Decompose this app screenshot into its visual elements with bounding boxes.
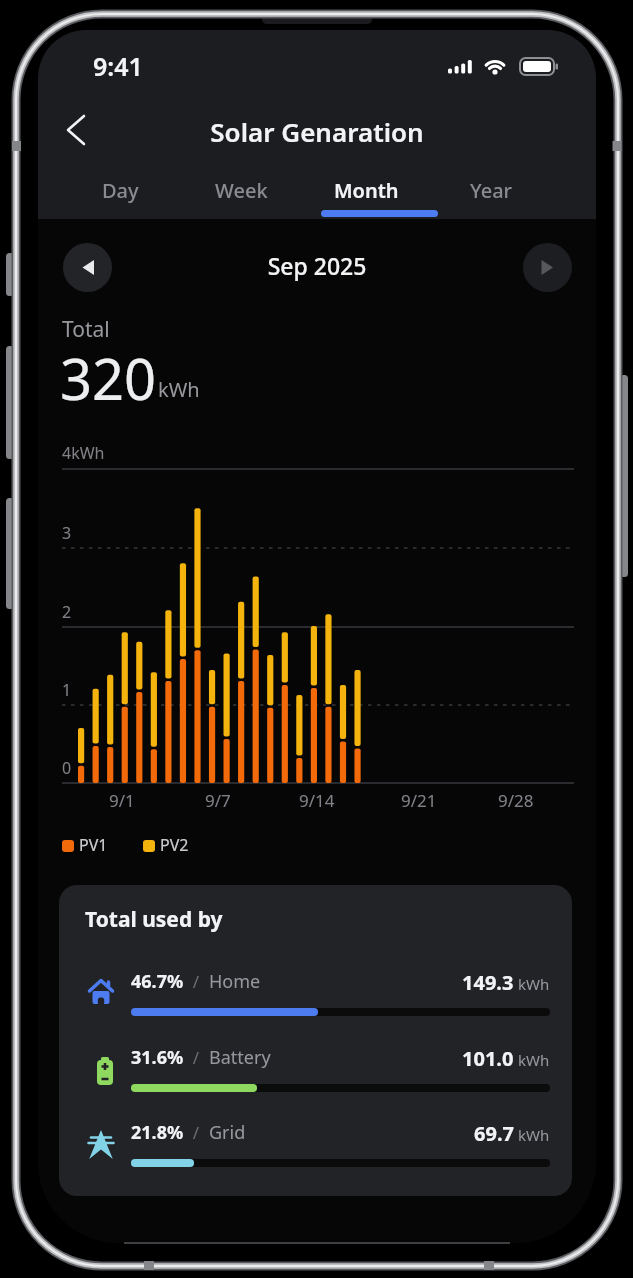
staticText: Total <box>62 315 110 344</box>
button[interactable]: Week <box>181 175 301 205</box>
staticText: Day <box>102 177 139 204</box>
button[interactable]: 31.6% <box>59 1045 572 1115</box>
staticText: 3 <box>62 522 72 544</box>
staticText: 69.7 <box>474 1120 514 1146</box>
staticText: PV2 <box>160 834 189 856</box>
staticText: / <box>184 1046 209 1069</box>
staticText: Grid <box>209 1120 246 1145</box>
button[interactable]: Year <box>431 175 551 205</box>
staticText: / <box>184 970 209 993</box>
staticText: 9/7 <box>205 789 231 812</box>
staticText: 9/21 <box>401 789 437 812</box>
staticText: 9:41 <box>93 49 143 83</box>
staticText: 101.0 <box>462 1045 514 1071</box>
staticText: 46.7% <box>131 969 184 994</box>
staticText: Month <box>334 177 399 204</box>
staticText: Year <box>470 177 513 204</box>
staticText: Week <box>215 177 268 204</box>
staticText: / <box>184 1121 209 1144</box>
staticText: 320 <box>60 340 157 416</box>
staticText: 31.6% <box>131 1045 184 1070</box>
staticText: Home <box>209 969 261 994</box>
button[interactable]: 21.8% <box>59 1120 572 1190</box>
staticText: kWh <box>158 376 200 403</box>
staticText: 9/1 <box>109 789 135 812</box>
staticText: 0 <box>62 757 72 779</box>
staticText: kWh <box>518 1050 550 1070</box>
staticText: kWh <box>518 1125 550 1145</box>
staticText: kWh <box>518 974 550 994</box>
staticText: 2 <box>62 601 72 623</box>
staticText: 1 <box>62 679 72 701</box>
button[interactable]: 46.7% <box>59 969 572 1039</box>
staticText: Solar Genaration <box>38 114 596 149</box>
staticText: PV1 <box>79 834 108 856</box>
staticText: 21.8% <box>131 1120 184 1145</box>
staticText: 9/28 <box>498 789 534 812</box>
button[interactable] <box>523 243 572 292</box>
staticText: Total used by <box>85 905 223 934</box>
button[interactable]: Day <box>60 175 180 205</box>
staticText: 4kWh <box>62 442 105 464</box>
staticText: Battery <box>209 1045 271 1070</box>
staticText: 9/14 <box>299 789 335 812</box>
staticText: Sep 2025 <box>38 250 596 281</box>
staticText: 149.3 <box>462 969 514 995</box>
button[interactable]: Month <box>306 175 426 205</box>
button[interactable] <box>63 243 112 292</box>
